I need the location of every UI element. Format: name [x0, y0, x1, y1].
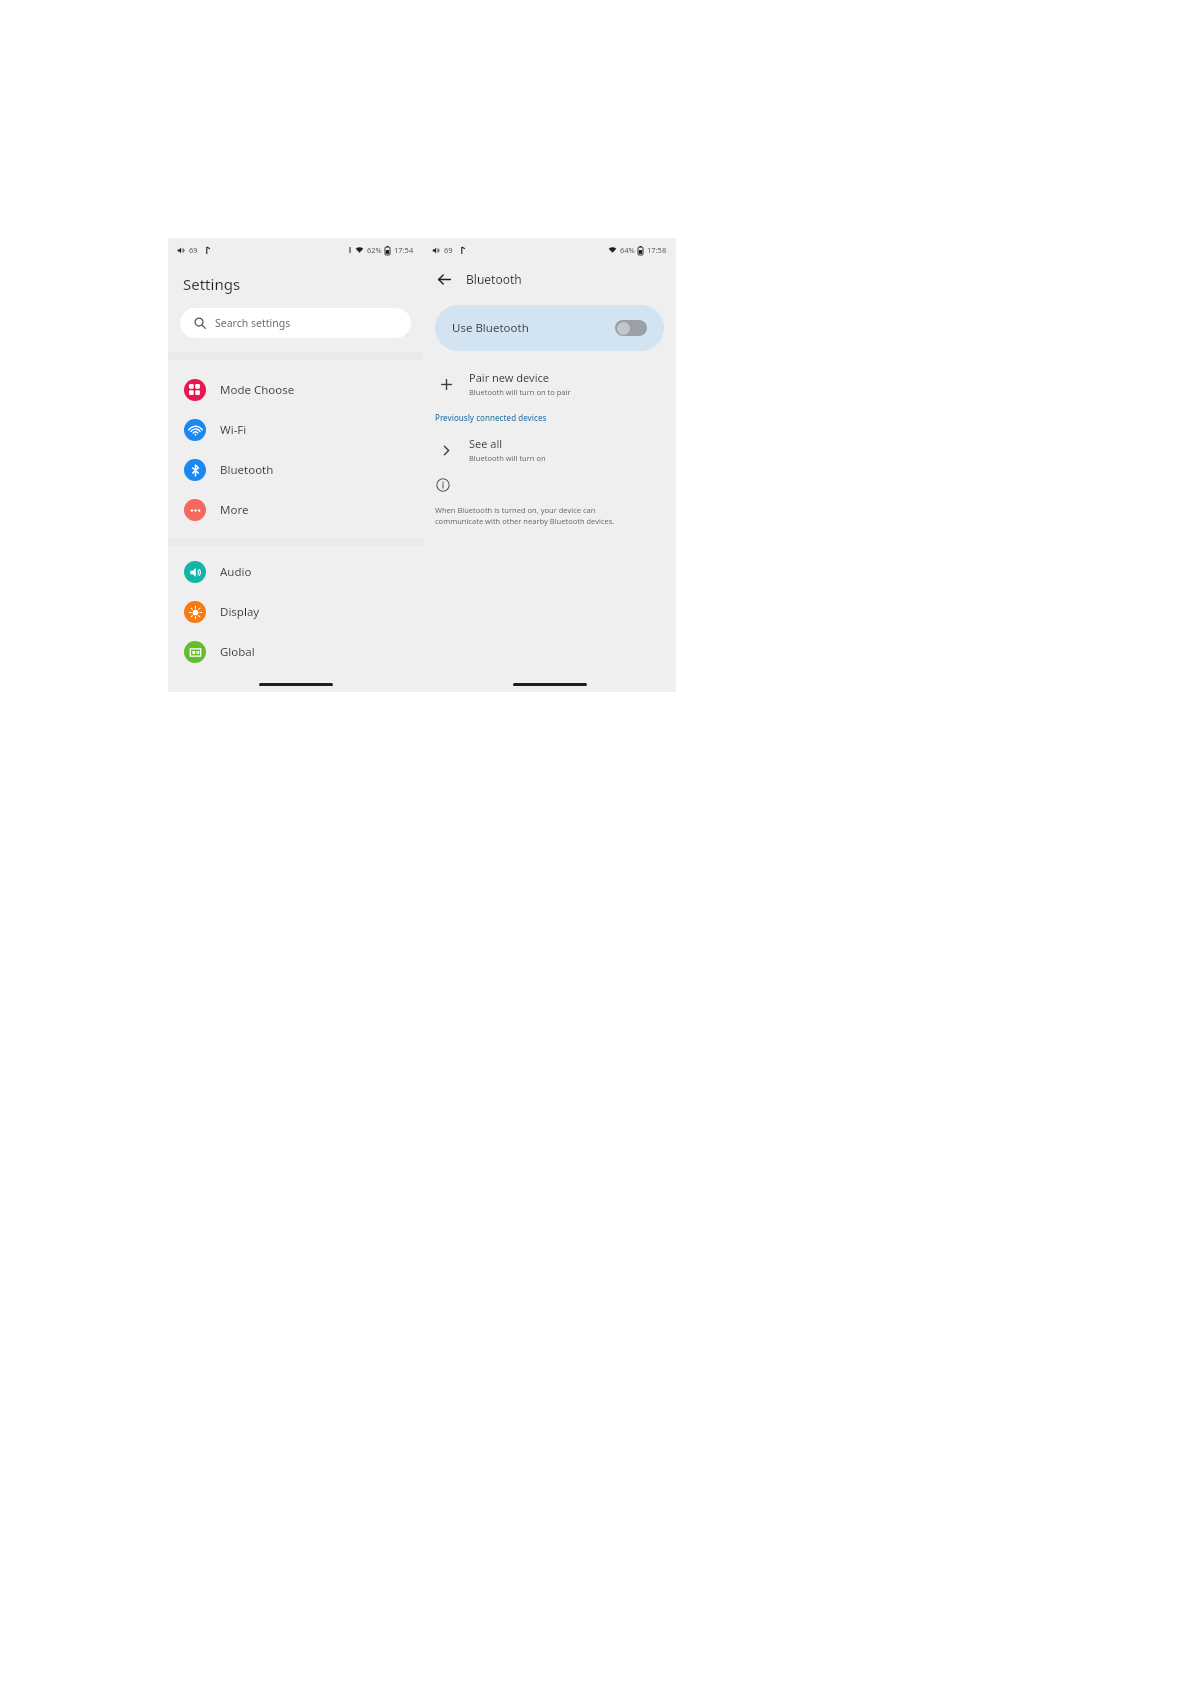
staticText: 69 — [189, 245, 198, 255]
button[interactable]: Mode Choose — [168, 370, 423, 410]
staticText: More — [220, 502, 249, 518]
staticText: Bluetooth — [220, 462, 274, 478]
button[interactable]: Use Bluetooth — [435, 305, 664, 351]
staticText: Search settings — [215, 316, 291, 330]
button[interactable]: More — [168, 490, 423, 530]
staticText: 17:58 — [647, 245, 667, 255]
staticText: Pair new device — [469, 370, 550, 385]
button[interactable]: Wi-Fi — [168, 410, 423, 450]
staticText: Wi-Fi — [220, 422, 247, 438]
button[interactable]: Back — [431, 266, 457, 292]
staticText: When Bluetooth is turned on, your device… — [435, 505, 615, 526]
button[interactable]: Global — [168, 632, 423, 672]
staticText: Use Bluetooth — [452, 320, 529, 336]
button[interactable]: Pair new device — [423, 367, 676, 400]
staticText: Bluetooth will turn on to pair — [469, 387, 571, 397]
button[interactable]: Search settings — [180, 308, 411, 338]
staticText: Global — [220, 644, 255, 660]
staticText: 62% — [367, 245, 382, 255]
staticText: Bluetooth — [466, 271, 522, 287]
staticText: Display — [220, 604, 260, 620]
button[interactable]: Audio — [168, 552, 423, 592]
staticText: Bluetooth will turn on — [469, 453, 546, 463]
staticText: Settings — [183, 274, 241, 294]
staticText: 17:54 — [394, 245, 414, 255]
staticText: See all — [469, 436, 503, 451]
staticText: 64% — [620, 245, 635, 255]
button[interactable]: Bluetooth — [168, 450, 423, 490]
staticText: Mode Choose — [220, 382, 295, 398]
button[interactable]: Display — [168, 592, 423, 632]
button[interactable]: See all — [423, 433, 676, 466]
staticText: Previously connected devices — [435, 412, 547, 423]
staticText: 69 — [444, 245, 453, 255]
staticText: Audio — [220, 564, 252, 580]
